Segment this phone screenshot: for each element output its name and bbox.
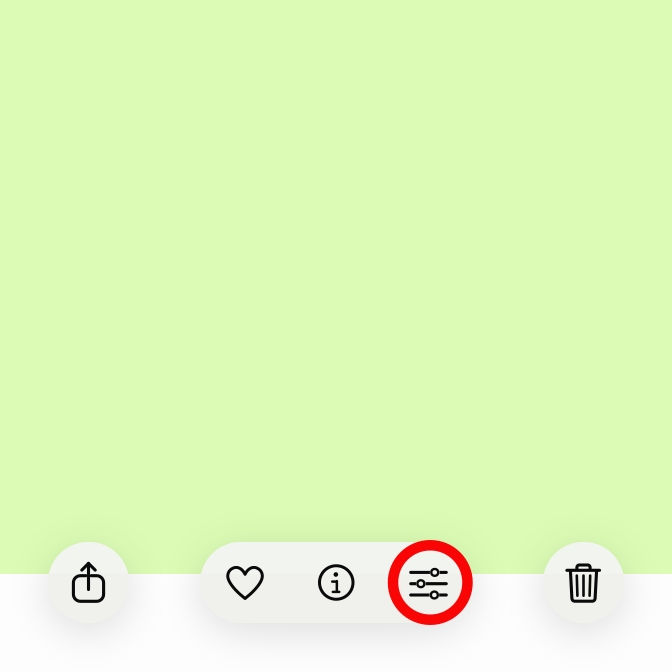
button[interactable]: Delete	[543, 542, 624, 623]
button[interactable]: Share	[48, 542, 129, 623]
button[interactable]: Favorite	[203, 542, 287, 623]
button[interactable]: Info	[294, 542, 378, 623]
button[interactable]: Adjust	[387, 542, 474, 623]
